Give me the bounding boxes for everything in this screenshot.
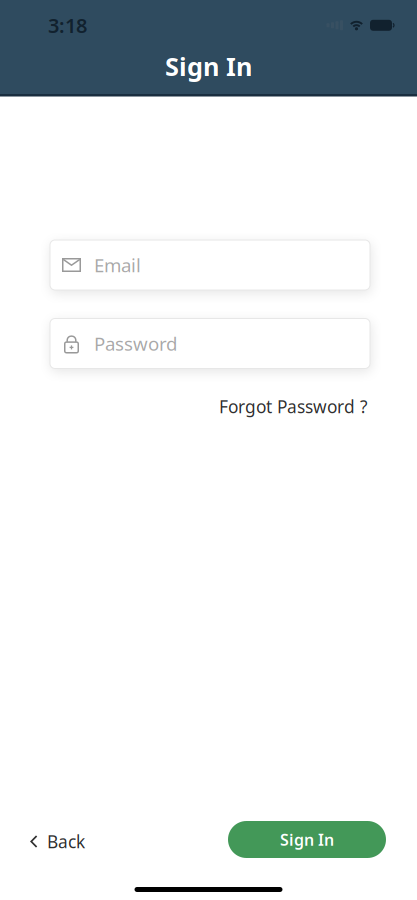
button[interactable]: Forgot Password ? [219,395,368,418]
button[interactable]: Password [50,318,370,368]
staticText: Back [47,830,85,853]
staticText: Forgot Password ? [219,395,368,418]
button[interactable]: Sign In [228,821,386,858]
button[interactable]: Email [50,240,370,290]
staticText: Password [94,331,177,356]
button[interactable]: Back [30,830,85,853]
staticText: 3:18 [48,12,87,39]
staticText: Sign In [165,49,252,83]
staticText: Sign In [280,829,334,850]
staticText: Email [94,253,141,277]
